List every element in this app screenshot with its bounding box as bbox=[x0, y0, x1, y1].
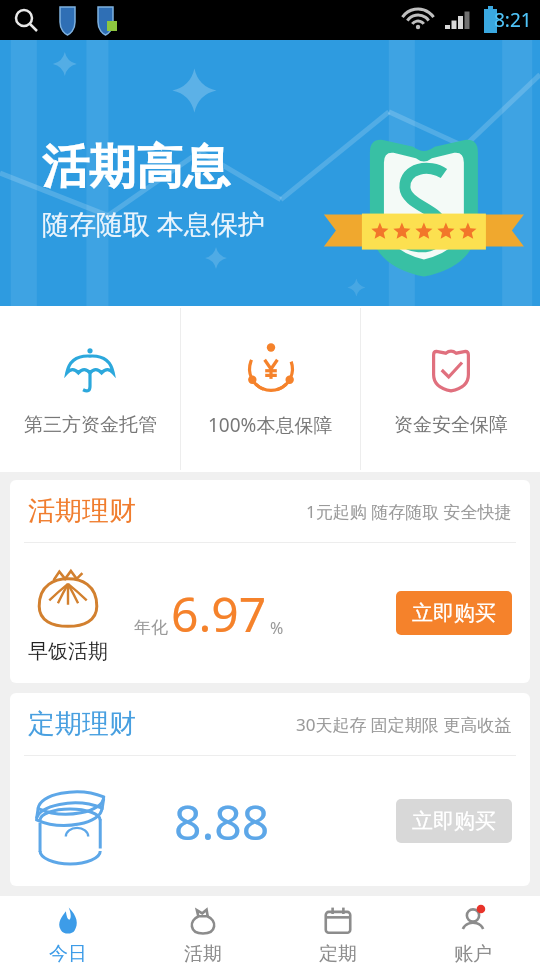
button[interactable]: 今日 bbox=[0, 896, 135, 974]
button[interactable]: 活期 bbox=[135, 896, 270, 974]
staticText: 活期高息 bbox=[42, 138, 230, 197]
staticText: 30天起存 固定期限 更高收益 bbox=[296, 713, 512, 736]
staticText: 定期理财 bbox=[28, 707, 136, 741]
staticText: 活期理财 bbox=[28, 494, 136, 528]
staticText: 8:21 bbox=[494, 7, 532, 33]
staticText: 8.88 bbox=[174, 789, 270, 854]
staticText: 资金安全保障 bbox=[394, 413, 508, 437]
button[interactable]: 资金安全保障 bbox=[361, 306, 540, 472]
button[interactable]: 立即购买 bbox=[396, 591, 512, 635]
staticText: 1元起购 随存随取 安全快捷 bbox=[306, 500, 512, 523]
staticText: 定期 bbox=[319, 942, 357, 966]
button[interactable]: 账户 bbox=[405, 896, 540, 974]
staticText: 今日 bbox=[49, 942, 87, 966]
button[interactable]: 100%本息保障 bbox=[181, 306, 360, 472]
staticText: 6.97 bbox=[171, 581, 267, 646]
staticText: 第三方资金托管 bbox=[24, 413, 157, 437]
staticText: 活期 bbox=[184, 942, 222, 966]
button[interactable]: 活期理财 bbox=[10, 480, 530, 683]
button[interactable]: 定期理财 bbox=[10, 693, 530, 886]
staticText: 随存随取 本息保护 bbox=[42, 205, 266, 242]
staticText: % bbox=[270, 617, 284, 639]
staticText: 年化 bbox=[134, 617, 168, 638]
staticText: 早饭活期 bbox=[28, 639, 108, 664]
button[interactable]: 立即购买 bbox=[396, 799, 512, 843]
staticText: 立即购买 bbox=[412, 808, 496, 834]
staticText: 立即购买 bbox=[412, 600, 496, 626]
button[interactable]: 第三方资金托管 bbox=[0, 306, 180, 472]
staticText: 账户 bbox=[454, 942, 492, 966]
staticText: 100%本息保障 bbox=[208, 412, 333, 438]
button[interactable]: 定期 bbox=[270, 896, 405, 974]
